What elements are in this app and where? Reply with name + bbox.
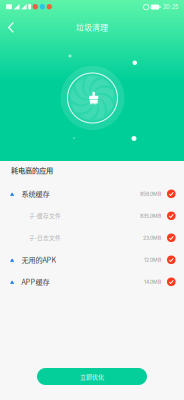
button[interactable]: 无用的APK (0, 249, 184, 271)
staticText: APP缓存 (21, 276, 49, 287)
button[interactable]: 子-缓存文件 (0, 205, 184, 227)
staticText: 858.0MB (140, 191, 161, 197)
staticText: 23.0MB (143, 235, 161, 241)
staticText: 子-日志文件 (29, 233, 61, 242)
staticText: 立即优化 (80, 372, 104, 381)
button[interactable]: APP缓存 (0, 271, 184, 293)
staticText: 12.0MB (144, 257, 161, 263)
button[interactable]: Back (0, 14, 22, 40)
staticText: 无用的APK (21, 254, 56, 265)
button[interactable]: 系统缓存 (0, 183, 184, 205)
staticText: 20:25 (163, 4, 178, 10)
button[interactable]: 子-日志文件 (0, 227, 184, 249)
staticText: 垃圾清理 (76, 21, 108, 33)
staticText: 系统缓存 (21, 188, 49, 199)
staticText: 子-缓存文件 (29, 211, 61, 220)
staticText: 835.0MB (140, 213, 161, 219)
staticText: 14.0MB (144, 279, 161, 285)
staticText: 耗电高的应用 (11, 165, 53, 175)
button[interactable]: 立即优化 (37, 368, 147, 385)
